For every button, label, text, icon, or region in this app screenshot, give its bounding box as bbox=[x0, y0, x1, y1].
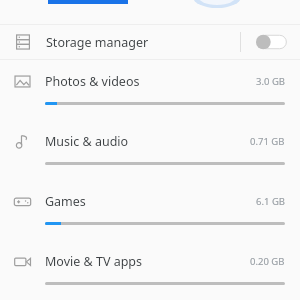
staticText: 0.20 GB bbox=[250, 255, 285, 268]
staticText: Music & audio bbox=[45, 133, 250, 150]
staticText: 6.1 GB bbox=[256, 195, 285, 208]
button[interactable]: Music & audio bbox=[0, 120, 300, 180]
staticText: Games bbox=[45, 193, 256, 210]
staticText: 3.0 GB bbox=[256, 75, 285, 88]
staticText: Storage manager bbox=[46, 34, 240, 51]
button[interactable]: Toggle storage manager bbox=[241, 25, 300, 59]
button[interactable]: Movie & TV apps bbox=[0, 240, 300, 300]
staticText: 0.71 GB bbox=[250, 135, 285, 148]
staticText: Photos & videos bbox=[45, 73, 256, 90]
button[interactable]: Games bbox=[0, 180, 300, 240]
button[interactable]: Storage manager bbox=[0, 25, 300, 59]
button[interactable]: Photos & videos bbox=[0, 60, 300, 120]
staticText: Movie & TV apps bbox=[45, 253, 250, 270]
